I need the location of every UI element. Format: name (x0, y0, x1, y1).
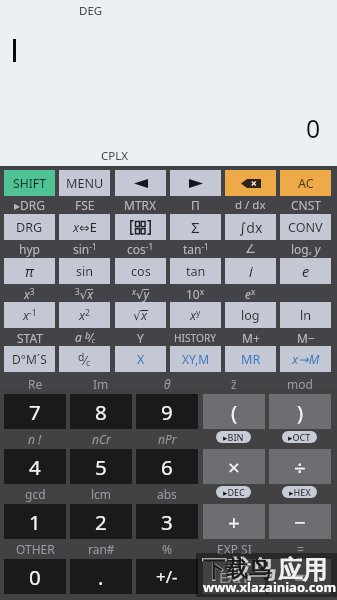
button[interactable]: √x (115, 302, 166, 328)
staticText: log (241, 307, 260, 324)
button[interactable]: 5 (70, 449, 132, 484)
button[interactable]: tan (170, 258, 221, 284)
button[interactable]: ∫dx (225, 214, 276, 240)
staticText: x⇔E (73, 219, 97, 236)
staticText: tan-1 (183, 241, 209, 257)
staticText: x2 (79, 307, 90, 324)
button[interactable]: 1 (4, 504, 66, 539)
staticText: ▸BIN (223, 431, 244, 443)
staticText: gcd (25, 486, 46, 502)
button[interactable]: 9 (136, 394, 198, 429)
button[interactable]: MR (225, 346, 276, 372)
staticText: cos-1 (127, 241, 154, 257)
button[interactable]: ( (203, 394, 265, 429)
button[interactable]: D°M´S (4, 346, 55, 372)
button[interactable]: e (280, 258, 331, 284)
button[interactable]: SHIFT (4, 170, 55, 196)
staticText: Y (137, 330, 144, 346)
button[interactable]: ÷ (269, 449, 331, 484)
button[interactable]: 0 (4, 559, 66, 594)
button[interactable]: × (203, 449, 265, 484)
button[interactable]: Matrix (115, 214, 166, 240)
staticText: a b⁄c (75, 329, 95, 346)
button[interactable]: XY,M (170, 346, 221, 372)
button[interactable]: 4 (4, 449, 66, 484)
button[interactable]: ▸HEX (282, 486, 317, 498)
staticText: mod (287, 376, 313, 392)
button[interactable]: x-1 (4, 302, 55, 328)
button[interactable]: DRG (4, 214, 55, 240)
button[interactable]: − (269, 504, 331, 539)
button[interactable]: ▸OCT (282, 431, 317, 443)
button[interactable]: x2 (59, 302, 110, 328)
button[interactable]: . (70, 559, 132, 594)
button[interactable]: + (203, 504, 265, 539)
staticText: Σ (191, 217, 200, 237)
staticText: lcm (91, 486, 112, 502)
button[interactable]: 7 (4, 394, 66, 429)
staticText: M− (297, 330, 315, 346)
button[interactable]: sin (59, 258, 110, 284)
button[interactable]: Σ (170, 214, 221, 240)
button[interactable]: d⁄c (59, 346, 110, 372)
button[interactable]: 2 (70, 504, 132, 539)
staticText: CNST (291, 197, 321, 213)
staticText: 下载鸟 (203, 555, 271, 583)
staticText: 5 (95, 453, 107, 481)
button[interactable]: π (4, 258, 55, 284)
staticText: MR (241, 351, 261, 368)
button[interactable]: CONV (280, 214, 331, 240)
button[interactable]: log (225, 302, 276, 328)
staticText: i (249, 261, 253, 281)
button[interactable]: x→M (280, 346, 331, 372)
button[interactable]: Cursor right (170, 170, 221, 196)
staticText: Π (191, 197, 200, 213)
staticText: ∠ (245, 242, 256, 256)
staticText: ▸OCT (288, 431, 311, 443)
button[interactable]: Backspace (225, 170, 276, 196)
staticText: sin (76, 263, 94, 280)
button[interactable]: ln (280, 302, 331, 328)
staticText: ex (245, 286, 256, 302)
button[interactable]: MENU (59, 170, 110, 196)
staticText: √x (133, 307, 148, 324)
staticText: 0 (29, 563, 41, 591)
button[interactable]: ) (269, 394, 331, 429)
staticText: x√y (132, 286, 150, 302)
staticText: 3 (161, 508, 173, 536)
button[interactable]: i (225, 258, 276, 284)
button[interactable]: 3 (136, 504, 198, 539)
staticText: CONV (288, 219, 323, 236)
staticText: 4 (29, 453, 41, 481)
staticText: 0 (306, 111, 321, 145)
staticText: = (297, 541, 304, 557)
staticText: × (228, 453, 240, 481)
staticText: ÷ (294, 453, 306, 481)
staticText: 6 (161, 453, 173, 481)
staticText: Re (28, 376, 43, 392)
staticText: D°M´S (12, 351, 47, 367)
staticText: − (294, 508, 306, 536)
staticText: 3√x (75, 286, 94, 302)
button[interactable]: 8 (70, 394, 132, 429)
button[interactable]: = (269, 559, 331, 594)
staticText: 8 (95, 398, 107, 426)
button[interactable]: ▸DEC (216, 486, 251, 498)
staticText: EXIT (219, 567, 250, 587)
staticText: MENU (66, 175, 104, 192)
button[interactable]: cos (115, 258, 166, 284)
staticText: d / dx (235, 197, 266, 213)
button[interactable]: 6 (136, 449, 198, 484)
button[interactable]: Cursor left (115, 170, 166, 196)
staticText: 7 (29, 398, 41, 426)
staticText: ▸HEX (289, 486, 311, 498)
button[interactable]: xy (170, 302, 221, 328)
staticText: % (162, 541, 172, 557)
button[interactable]: EXIT (203, 559, 265, 594)
button[interactable]: ▸BIN (216, 431, 251, 443)
button[interactable]: AC (280, 170, 331, 196)
button[interactable]: +/- (136, 559, 198, 594)
button[interactable]: X (115, 346, 166, 372)
button[interactable]: x⇔E (59, 214, 110, 240)
staticText: X (137, 351, 145, 368)
